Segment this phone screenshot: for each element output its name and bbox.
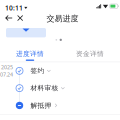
button[interactable]: 2025 (0, 62, 120, 79)
button[interactable]: 材料审核 (0, 79, 120, 97)
staticText: 解抵押 (30, 101, 51, 110)
staticText: 07.24 (0, 71, 13, 78)
button[interactable]: Close (16, 14, 24, 22)
staticText: 签约 (30, 67, 44, 75)
staticText: 进度详情 (16, 50, 44, 58)
staticText: 交易进度 (46, 14, 78, 23)
button[interactable]: Promotion banner (6, 28, 46, 37)
button[interactable]: 解抵押 (0, 97, 120, 114)
staticText: 材料审核 (30, 84, 58, 92)
staticText: 2025 (1, 64, 13, 71)
button[interactable]: 资金详情 (60, 50, 120, 61)
button[interactable]: Back (4, 13, 13, 23)
staticText: 10:11 (5, 4, 23, 12)
staticText: 资金详情 (76, 50, 104, 58)
button[interactable]: 进度详情 (0, 50, 60, 61)
